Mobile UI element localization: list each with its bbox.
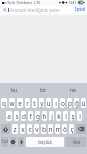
staticText: x bbox=[21, 125, 25, 134]
button[interactable]: d bbox=[21, 111, 26, 121]
button[interactable]: a bbox=[6, 111, 12, 121]
button[interactable]: j bbox=[49, 111, 54, 121]
staticText: w bbox=[9, 99, 15, 108]
button[interactable]: boşluk bbox=[26, 137, 64, 147]
staticText: s bbox=[15, 112, 19, 121]
staticText: p bbox=[68, 99, 72, 108]
staticText: q bbox=[2, 99, 6, 108]
staticText: ö bbox=[63, 125, 67, 134]
button[interactable]: h bbox=[42, 111, 47, 121]
button[interactable]: ı bbox=[53, 98, 58, 108]
button[interactable]: Emoji bbox=[10, 137, 16, 147]
button[interactable]: l bbox=[63, 111, 68, 121]
button[interactable]: ne bbox=[58, 83, 87, 98]
staticText: v bbox=[35, 125, 39, 134]
button[interactable]: n bbox=[48, 124, 53, 134]
button[interactable]: o bbox=[60, 98, 65, 108]
button[interactable]: ğ bbox=[74, 98, 79, 108]
button[interactable]: c bbox=[27, 124, 32, 134]
button[interactable]: p bbox=[67, 98, 72, 108]
staticText: y bbox=[40, 99, 44, 108]
staticText: ç bbox=[70, 125, 74, 134]
button[interactable]: w bbox=[9, 98, 15, 108]
button[interactable]: ö bbox=[62, 124, 67, 134]
staticText: ü bbox=[81, 99, 86, 108]
staticText: 123 bbox=[1, 139, 8, 145]
staticText: m bbox=[55, 125, 60, 134]
button[interactable]: r bbox=[25, 98, 30, 108]
staticText: u bbox=[46, 99, 51, 108]
staticText: h bbox=[42, 112, 47, 121]
button[interactable]: e bbox=[17, 98, 23, 108]
button[interactable]: b bbox=[41, 124, 46, 134]
staticText: t bbox=[33, 99, 36, 108]
staticText: l bbox=[65, 112, 67, 121]
staticText: i bbox=[79, 112, 81, 121]
button[interactable]: m bbox=[55, 124, 60, 134]
staticText: boşluk bbox=[38, 139, 52, 145]
button[interactable]: u bbox=[46, 98, 51, 108]
button[interactable]: ç bbox=[69, 124, 74, 134]
button[interactable]: Ara bbox=[66, 137, 86, 147]
button[interactable]: Voice input bbox=[18, 137, 24, 147]
staticText: Turk Telekom bbox=[7, 0, 33, 5]
staticText: r bbox=[26, 99, 29, 108]
button[interactable]: k bbox=[56, 111, 61, 121]
button[interactable]: Backspace bbox=[76, 124, 86, 134]
button[interactable]: y bbox=[39, 98, 44, 108]
staticText: bir bbox=[40, 87, 47, 94]
staticText: ş bbox=[71, 112, 75, 121]
staticText: o bbox=[61, 99, 65, 108]
staticText: f bbox=[29, 112, 32, 121]
button[interactable]: İptal bbox=[75, 6, 86, 13]
staticText: ne bbox=[70, 87, 76, 94]
staticText: n bbox=[48, 125, 53, 134]
staticText: e bbox=[18, 99, 22, 108]
button[interactable]: f bbox=[28, 111, 33, 121]
button[interactable]: 123 bbox=[1, 137, 8, 147]
button[interactable]: Shift bbox=[1, 124, 10, 134]
button[interactable]: s bbox=[14, 111, 19, 121]
button[interactable]: ü bbox=[81, 98, 86, 108]
staticText: z bbox=[13, 125, 17, 134]
staticText: Ara bbox=[73, 139, 80, 145]
staticText: b bbox=[42, 125, 46, 134]
staticText: ğ bbox=[75, 99, 79, 108]
button[interactable]: bir bbox=[29, 83, 58, 98]
staticText: c bbox=[28, 125, 32, 134]
staticText: j bbox=[51, 112, 53, 121]
staticText: Aramak istediğiniz yazın bbox=[10, 7, 60, 13]
staticText: LTE bbox=[34, 0, 41, 5]
button[interactable]: ş bbox=[70, 111, 75, 121]
button[interactable]: v bbox=[34, 124, 39, 134]
staticText: g bbox=[36, 112, 40, 121]
button[interactable]: g bbox=[35, 111, 40, 121]
staticText: k bbox=[57, 112, 61, 121]
button[interactable]: q bbox=[1, 98, 7, 108]
button[interactable]: Aramak istediğiniz yazın bbox=[2, 6, 73, 13]
staticText: d bbox=[22, 112, 26, 121]
staticText: ı bbox=[55, 99, 57, 108]
staticText: a bbox=[7, 112, 11, 121]
staticText: bu bbox=[11, 87, 18, 94]
staticText: İptal bbox=[75, 6, 86, 13]
staticText: %41 bbox=[69, 0, 77, 5]
button[interactable]: t bbox=[32, 98, 37, 108]
button[interactable]: x bbox=[20, 124, 25, 134]
button[interactable]: z bbox=[12, 124, 18, 134]
button[interactable]: bu bbox=[0, 83, 29, 98]
button[interactable]: i bbox=[77, 111, 82, 121]
